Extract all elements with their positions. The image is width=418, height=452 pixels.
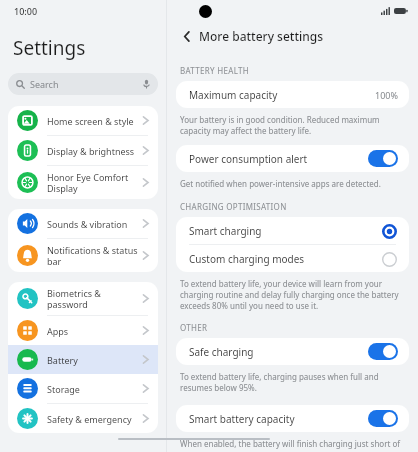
staticText: Maximum capacity [189, 88, 278, 102]
button[interactable]: Toggle on [368, 343, 398, 360]
button[interactable]: Maximum capacity [176, 81, 409, 108]
staticText: Settings [13, 35, 86, 61]
staticText: Your battery is in good condition. Reduc… [180, 114, 380, 136]
button[interactable]: Notifications & status bar [8, 239, 158, 272]
staticText: Get notified when power-intensive apps a… [180, 178, 381, 189]
staticText: Safe charging [189, 345, 254, 359]
staticText: To extend battery life, your device will… [180, 278, 399, 311]
staticText: Storage [47, 383, 80, 395]
staticText: Sounds & vibration [47, 218, 128, 230]
button[interactable]: Sounds & vibration [8, 209, 158, 239]
button[interactable]: Toggle on [368, 150, 398, 167]
button[interactable]: Select option [380, 250, 398, 268]
staticText: Search [30, 78, 59, 90]
button[interactable]: Back [178, 28, 195, 45]
staticText: OTHER [180, 322, 208, 333]
staticText: More battery settings [199, 28, 324, 44]
button[interactable]: Power consumption alert [176, 145, 409, 172]
staticText: 100% [375, 89, 398, 101]
button[interactable]: Display & brightness [8, 136, 158, 166]
button[interactable]: Toggle on [368, 410, 398, 427]
button[interactable]: Smart charging [176, 217, 409, 245]
staticText: Apps [47, 325, 69, 337]
button[interactable]: Battery [8, 345, 158, 374]
staticText: 10:00 [14, 5, 38, 17]
staticText: BATTERY HEALTH [180, 65, 249, 76]
staticText: When enabled, the battery will finish ch… [180, 438, 401, 449]
staticText: To extend battery life, charging pauses … [180, 371, 379, 393]
staticText: Battery [47, 354, 78, 366]
button[interactable]: Smart battery capacity [176, 405, 409, 432]
staticText: Notifications & status bar [47, 244, 138, 268]
button[interactable]: Honor Eye Comfort Display [8, 166, 158, 199]
button[interactable]: Safe charging [176, 338, 409, 365]
button[interactable]: Select option [380, 222, 398, 240]
button[interactable]: Apps [8, 316, 158, 345]
staticText: Home screen & style [47, 115, 134, 127]
staticText: Smart charging [189, 224, 262, 238]
staticText: Honor Eye Comfort Display [47, 171, 129, 195]
staticText: Safety & emergency [47, 413, 132, 425]
staticText: CHARGING OPTIMISATION [180, 201, 287, 212]
staticText: Power consumption alert [189, 152, 308, 166]
staticText: Custom charging modes [189, 252, 305, 266]
button[interactable]: Home screen & style [8, 106, 158, 136]
staticText: Display & brightness [47, 145, 135, 157]
button[interactable]: Biometrics & password [8, 282, 158, 316]
staticText: Biometrics & password [47, 287, 101, 311]
button[interactable]: Storage [8, 374, 158, 404]
button[interactable]: Search [8, 73, 158, 95]
button[interactable]: Custom charging modes [176, 245, 409, 272]
staticText: Smart battery capacity [189, 412, 295, 426]
button[interactable]: Safety & emergency [8, 404, 158, 433]
